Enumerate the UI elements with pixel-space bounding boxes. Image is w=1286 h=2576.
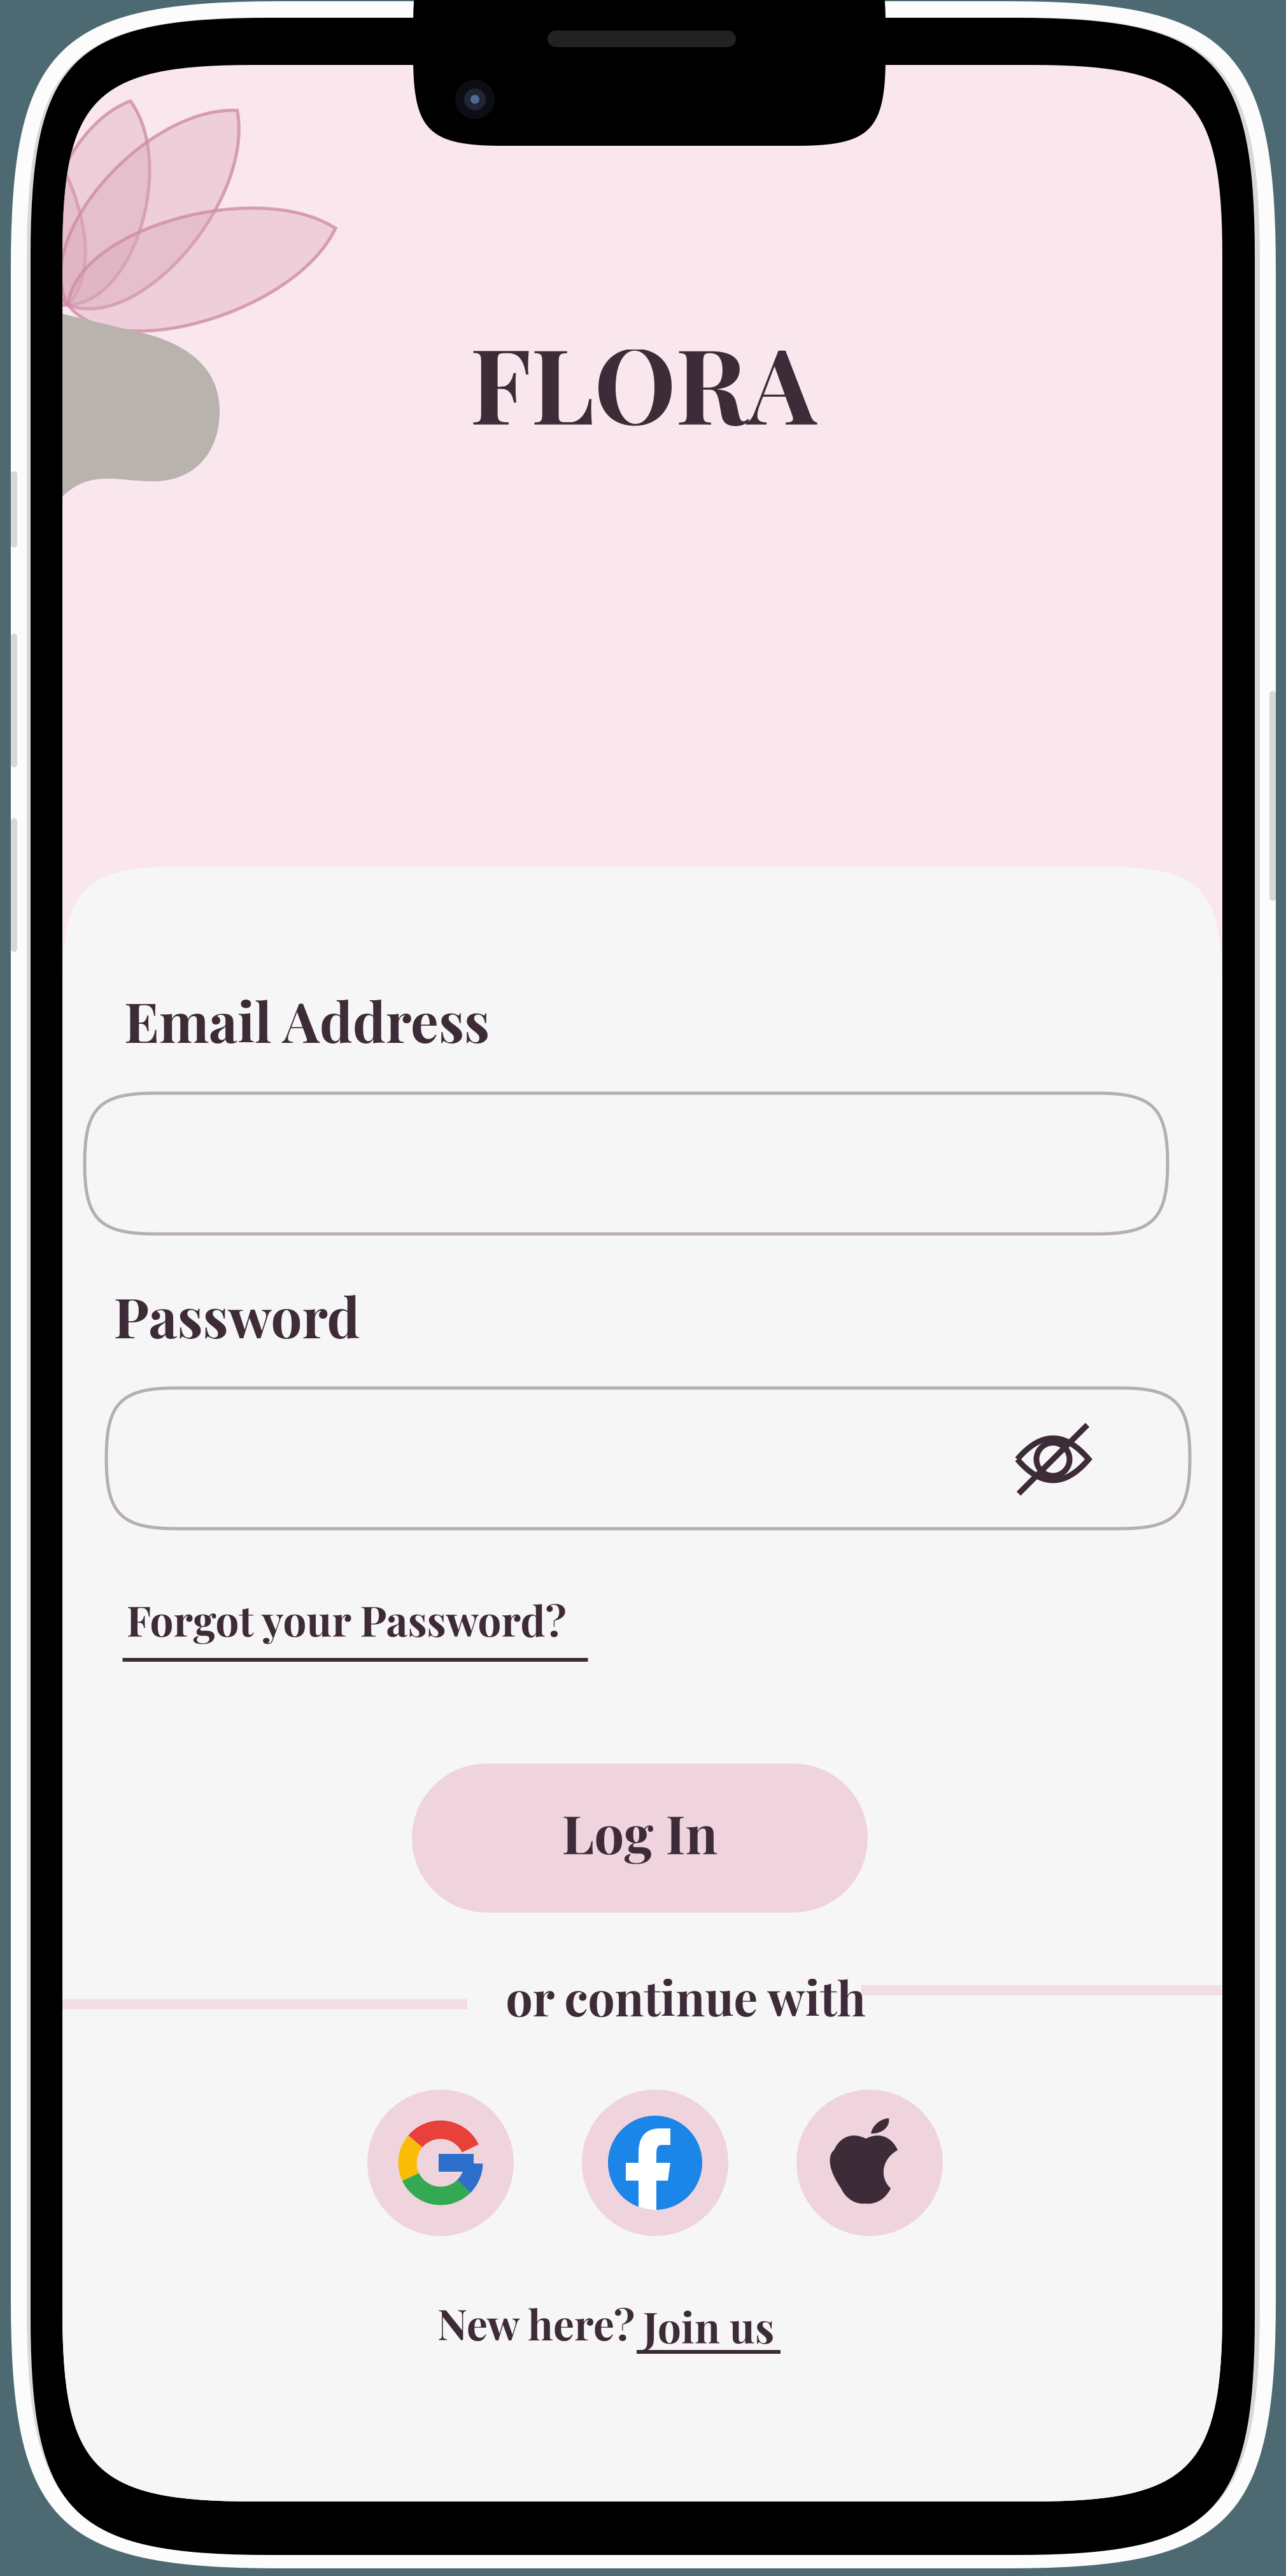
staticText: Email Address — [124, 983, 490, 1057]
button[interactable]: Continue with Google — [367, 2090, 514, 2236]
button[interactable]: Forgot your Password? — [120, 1585, 591, 1667]
staticText: Join us — [643, 2298, 774, 2354]
staticText: Password — [114, 1279, 360, 1352]
button[interactable]: Show password — [1015, 1420, 1091, 1499]
button[interactable]: Log In — [412, 1764, 868, 1913]
staticText: Log In — [562, 1797, 718, 1867]
button[interactable]: Continue with Apple — [796, 2090, 943, 2236]
staticText: Forgot your Password? — [126, 1591, 566, 1647]
staticText: FLORA — [470, 312, 816, 450]
button[interactable]: Continue with Facebook — [582, 2090, 728, 2236]
staticText: New here? — [437, 2295, 635, 2351]
button[interactable]: Join us — [635, 2299, 782, 2356]
staticText: or continue with — [506, 1965, 866, 2028]
